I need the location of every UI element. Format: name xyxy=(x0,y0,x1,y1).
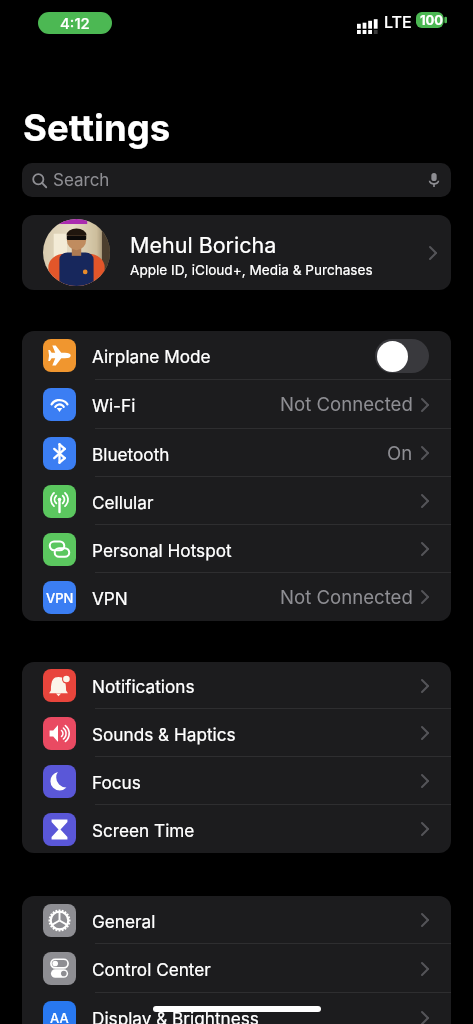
button[interactable]: Cellular xyxy=(22,477,451,525)
staticText: On xyxy=(387,442,413,465)
staticText: VPN xyxy=(92,588,128,609)
button[interactable]: Notifications xyxy=(22,662,451,709)
staticText: 4:12 xyxy=(60,14,90,32)
button[interactable]: Airplane Mode xyxy=(22,331,451,380)
staticText: Control Center xyxy=(92,959,211,980)
staticText: Personal Hotspot xyxy=(92,540,232,561)
staticText: Search xyxy=(53,170,110,191)
staticText: Not Connected xyxy=(280,586,413,609)
staticText: Notifications xyxy=(92,676,195,697)
button[interactable]: Search xyxy=(22,163,451,197)
staticText: Display & Brightness xyxy=(92,1008,259,1024)
staticText: General xyxy=(92,911,156,932)
button[interactable]: VPN xyxy=(22,573,451,621)
staticText: Bluetooth xyxy=(92,444,170,465)
button[interactable]: Airplane Mode toggle xyxy=(375,339,429,373)
staticText: Screen Time xyxy=(92,820,195,841)
staticText: Not Connected xyxy=(280,393,413,416)
button[interactable]: Wi-Fi xyxy=(22,380,451,429)
button[interactable]: AA xyxy=(22,993,451,1024)
staticText: Airplane Mode xyxy=(92,346,211,367)
button[interactable]: Focus xyxy=(22,757,451,805)
staticText: AA xyxy=(50,1010,69,1024)
staticText: Cellular xyxy=(92,492,154,513)
staticText: 100 xyxy=(420,12,444,28)
button[interactable]: Screen Time xyxy=(22,805,451,853)
button[interactable]: Bluetooth xyxy=(22,429,451,477)
staticText: LTE xyxy=(384,12,412,31)
staticText: Focus xyxy=(92,772,141,793)
staticText: Wi-Fi xyxy=(92,395,136,416)
button[interactable]: Personal Hotspot xyxy=(22,525,451,573)
button[interactable]: Control Center xyxy=(22,944,451,993)
staticText: Apple ID, iCloud+, Media & Purchases xyxy=(130,262,373,278)
staticText: Settings xyxy=(23,106,171,150)
button[interactable]: General xyxy=(22,896,451,944)
staticText: Sounds & Haptics xyxy=(92,724,236,745)
button[interactable]: Sounds & Haptics xyxy=(22,709,451,757)
staticText: Mehul Boricha xyxy=(130,232,277,258)
button[interactable]: Mehul Boricha xyxy=(22,215,451,290)
staticText: VPN xyxy=(46,590,74,606)
